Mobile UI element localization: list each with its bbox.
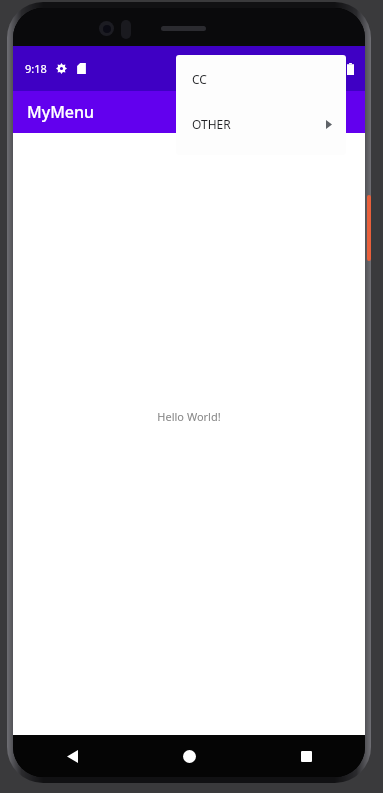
staticText: MyMenu bbox=[27, 101, 95, 123]
staticText: CC bbox=[192, 71, 207, 87]
button[interactable]: CC bbox=[176, 55, 346, 103]
button[interactable]: Home bbox=[131, 735, 248, 777]
button[interactable]: OTHER bbox=[176, 103, 346, 145]
staticText: 9:18 bbox=[25, 61, 47, 76]
staticText: OTHER bbox=[192, 116, 231, 132]
staticText: Hello World! bbox=[157, 409, 221, 424]
button[interactable]: Recent apps bbox=[248, 735, 365, 777]
button[interactable]: Back bbox=[13, 735, 131, 777]
